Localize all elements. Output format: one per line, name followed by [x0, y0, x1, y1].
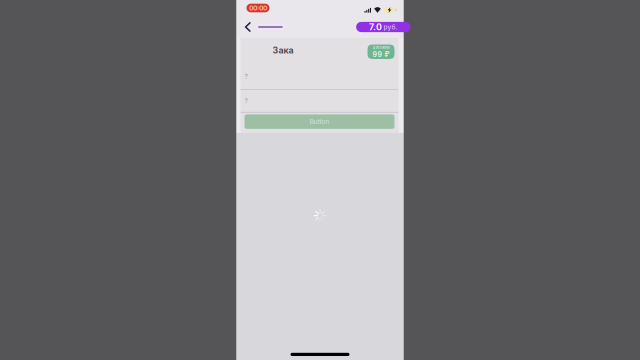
staticText: Button [309, 118, 329, 126]
staticText: 7.0 [369, 22, 382, 32]
staticText: доставка [372, 45, 389, 50]
button[interactable]: Button [244, 114, 394, 129]
staticText: 00:00 [249, 4, 267, 12]
button[interactable]: 7.0 [356, 22, 403, 32]
button[interactable]: Back [240, 16, 255, 37]
staticText: Зака [272, 45, 293, 56]
staticText: 99 ₽ [372, 50, 389, 59]
staticText: ? [244, 73, 247, 80]
staticText: ? [244, 97, 247, 105]
staticText: руб. [383, 23, 397, 31]
